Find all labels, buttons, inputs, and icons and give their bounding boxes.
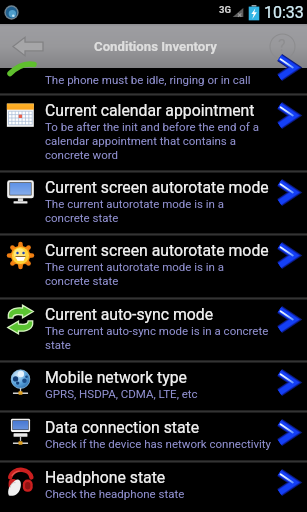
staticText: Current screen autorotate mode: [45, 178, 277, 197]
staticText: Current auto-sync mode: [45, 305, 277, 324]
button[interactable]: Mobile network type: [0, 363, 307, 410]
staticText: The current auto-sync mode is in a concr…: [45, 324, 275, 352]
staticText: Mobile network type: [45, 368, 277, 387]
button[interactable]: Help: [257, 24, 307, 68]
staticText: Check the headphone state: [45, 487, 275, 500]
staticText: Data connection state: [45, 418, 277, 437]
staticText: To be after the init and before the end …: [45, 120, 275, 162]
button[interactable]: The phone must be idle, ringing or in ca…: [0, 68, 307, 93]
button[interactable]: Back: [0, 24, 56, 68]
staticText: The current autorotate mode is in a conc…: [45, 260, 267, 288]
staticText: Check if the device has network connecti…: [45, 437, 277, 450]
staticText: Current calendar appointment: [45, 101, 277, 120]
button[interactable]: Current calendar appointment: [0, 96, 307, 170]
staticText: ?: [278, 36, 286, 55]
button[interactable]: Headphone state: [0, 463, 307, 512]
staticText: The phone must be idle, ringing or in ca…: [45, 73, 251, 86]
button[interactable]: Current screen autorotate mode: [0, 173, 307, 233]
staticText: Headphone state: [45, 468, 277, 487]
staticText: GPRS, HSDPA, CDMA, LTE, etc: [45, 387, 275, 400]
button[interactable]: Current screen autorotate mode: [0, 236, 307, 297]
staticText: 10:33: [264, 3, 304, 22]
button[interactable]: Current auto-sync mode: [0, 300, 307, 360]
staticText: Current screen autorotate mode: [45, 241, 277, 260]
staticText: Conditions Inventory: [94, 39, 217, 54]
button[interactable]: Data connection state: [0, 413, 307, 460]
staticText: The current autorotate mode is in a conc…: [45, 197, 267, 225]
staticText: 3G: [219, 4, 231, 15]
